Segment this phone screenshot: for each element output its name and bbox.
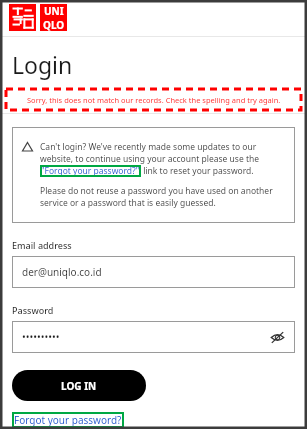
staticText: der@uniqlo.co.id <box>22 265 102 279</box>
staticText: "Forgot your password?" <box>41 165 140 177</box>
staticText: Password <box>12 304 54 316</box>
staticText: Can't login? We've recently made some up… <box>40 141 257 153</box>
staticText: Email address <box>12 239 72 251</box>
staticText: Forgot your password? <box>14 413 122 427</box>
staticText: Login <box>12 49 73 80</box>
button[interactable]: der@uniqlo.co.id <box>12 256 295 288</box>
staticText: LOG IN <box>61 379 97 393</box>
staticText: Please do not reuse a password you have … <box>40 185 273 197</box>
button[interactable]: Show password <box>267 327 287 347</box>
button[interactable]: "Forgot your password?" <box>40 165 141 177</box>
button[interactable]: •••••••••• <box>12 321 295 353</box>
staticText: service or a password that is easily gue… <box>40 197 216 209</box>
staticText: link to reset your password. <box>141 165 254 177</box>
staticText: website, to continue using your account … <box>40 153 260 165</box>
staticText: Sorry, this does not match our records. … <box>27 95 281 105</box>
button[interactable]: Forgot your password? <box>12 412 124 428</box>
staticText: UNI <box>44 4 64 18</box>
button[interactable]: LOG IN <box>12 370 146 401</box>
staticText: •••••••••• <box>22 330 60 344</box>
staticText: QLO <box>43 18 65 31</box>
button[interactable]: UNIQLO home <box>9 4 67 31</box>
